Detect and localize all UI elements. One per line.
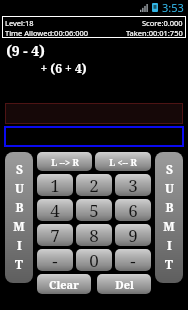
button[interactable]: - xyxy=(115,249,151,271)
staticText: M xyxy=(13,218,25,234)
button[interactable]: Clear xyxy=(37,274,91,294)
button[interactable]: Answer input xyxy=(4,126,184,147)
button[interactable]: 0 xyxy=(76,249,112,271)
button[interactable]: Submit xyxy=(5,152,33,283)
staticText: L --> R xyxy=(51,156,79,168)
staticText: Clear xyxy=(49,277,79,292)
button[interactable]: 5 xyxy=(76,199,112,221)
staticText: Taken:00:01:750 xyxy=(126,28,183,36)
staticText: Del xyxy=(115,277,134,292)
staticText: - xyxy=(52,249,58,271)
button[interactable]: 7 xyxy=(37,224,73,246)
staticText: S xyxy=(166,161,173,177)
staticText: (9 - 4) xyxy=(6,41,45,60)
staticText: I xyxy=(167,237,172,253)
staticText: 6 xyxy=(128,199,138,221)
staticText: I xyxy=(17,237,22,253)
staticText: U xyxy=(15,180,24,196)
staticText: 9 xyxy=(128,224,138,246)
button[interactable]: 6 xyxy=(115,199,151,221)
staticText: T xyxy=(165,256,173,272)
staticText: 5 xyxy=(89,199,99,221)
staticText: B xyxy=(15,199,24,215)
staticText: 4 xyxy=(50,199,60,221)
staticText: Time Allowed:00:06:000 xyxy=(5,28,89,36)
staticText: 3:53 xyxy=(162,0,184,15)
button[interactable]: L <-- R xyxy=(95,152,151,171)
staticText: 1 xyxy=(50,174,60,196)
staticText: M xyxy=(163,218,175,234)
button[interactable]: Submit xyxy=(155,152,183,283)
staticText: B xyxy=(165,199,174,215)
staticText: - xyxy=(130,249,136,271)
staticText: Level:18 xyxy=(5,18,34,28)
staticText: T xyxy=(15,256,23,272)
staticText: S xyxy=(16,161,23,177)
staticText: Score:0.000 xyxy=(142,18,183,28)
staticText: U xyxy=(165,180,174,196)
staticText: + (6 + 4) xyxy=(40,60,87,76)
button[interactable]: Del xyxy=(97,274,151,294)
button[interactable]: - xyxy=(37,249,73,271)
staticText: 3 xyxy=(128,174,138,196)
button[interactable]: L --> R xyxy=(37,152,92,171)
button[interactable]: 4 xyxy=(37,199,73,221)
button[interactable]: 3 xyxy=(115,174,151,196)
button[interactable]: 9 xyxy=(115,224,151,246)
staticText: 0 xyxy=(89,249,99,271)
staticText: L <-- R xyxy=(109,156,137,168)
staticText: 2 xyxy=(89,174,99,196)
button[interactable]: 1 xyxy=(37,174,73,196)
button[interactable]: 8 xyxy=(76,224,112,246)
staticText: 8 xyxy=(89,224,99,246)
staticText: 7 xyxy=(50,224,60,246)
button[interactable]: 2 xyxy=(76,174,112,196)
